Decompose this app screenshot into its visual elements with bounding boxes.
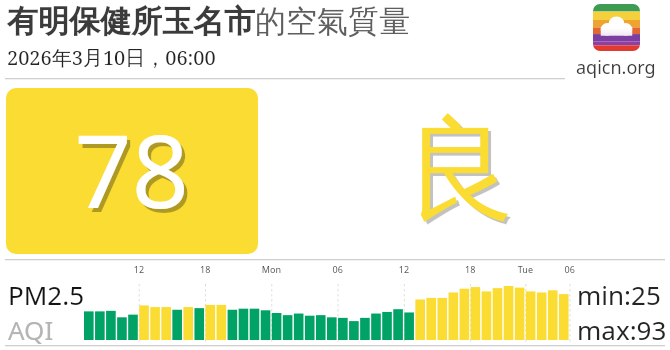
staticText: 有明保健所玉名市	[7, 2, 255, 41]
staticText: 的空氣質量	[255, 2, 410, 41]
staticText: max:93	[577, 312, 667, 347]
staticText: aqicn.org	[576, 55, 656, 80]
button[interactable]	[6, 88, 258, 254]
staticText: 2026年3月10日，06:00	[7, 44, 216, 71]
staticText: min:25	[577, 277, 661, 312]
button[interactable]: aqicn.org home	[593, 4, 640, 51]
staticText: AQI	[8, 312, 54, 347]
staticText: PM2.5	[8, 277, 85, 312]
